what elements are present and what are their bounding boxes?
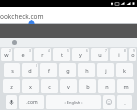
button[interactable]: u [91, 48, 108, 61]
button[interactable]: c [41, 79, 58, 93]
button[interactable]: v [60, 79, 77, 93]
staticText: k [123, 67, 126, 74]
button[interactable]: x [22, 79, 39, 93]
staticText: y [79, 51, 82, 58]
button[interactable]: k [116, 63, 133, 77]
staticText: r [41, 51, 44, 58]
staticText: c [48, 83, 51, 90]
staticText: u [98, 51, 102, 58]
staticText: n [105, 83, 109, 90]
button[interactable]: f [40, 63, 57, 77]
button[interactable]: h [78, 63, 95, 77]
button[interactable]: Emoji [103, 95, 115, 109]
staticText: 7 [105, 49, 107, 53]
button[interactable]: . [117, 95, 132, 109]
button[interactable]: t [53, 48, 70, 61]
button[interactable]: r [34, 48, 51, 61]
staticText: x [29, 83, 32, 90]
button[interactable]: ookcheck.com [0, 7, 137, 24]
staticText: g [66, 67, 70, 74]
button[interactable]: ‹ English › [46, 95, 101, 109]
button[interactable]: m [117, 79, 134, 93]
staticText: .com [26, 99, 38, 106]
staticText: 2 [9, 49, 11, 53]
button[interactable]: o [129, 48, 136, 61]
button[interactable]: Google search suggestion [12, 40, 17, 45]
staticText: 6 [86, 49, 88, 53]
staticText: 8 [124, 49, 126, 53]
staticText: o [131, 51, 135, 58]
other: Voice input [8, 99, 15, 106]
staticText: 3 [29, 49, 31, 53]
button[interactable]: n [98, 79, 115, 93]
staticText: w [4, 51, 9, 58]
staticText: v [67, 83, 70, 90]
staticText: h [85, 67, 89, 74]
button[interactable]: Voice input [6, 95, 17, 109]
staticText: ‹ English › [64, 100, 83, 105]
staticText: ookcheck.com [0, 12, 44, 21]
other: Text selection handle [28, 20, 35, 27]
button[interactable]: j [97, 63, 114, 77]
staticText: d [28, 67, 32, 74]
staticText: 4 [48, 49, 50, 53]
staticText: s [11, 67, 14, 74]
button[interactable]: g [59, 63, 76, 77]
staticText: e [21, 51, 25, 58]
staticText: 9 [133, 49, 135, 53]
staticText: b [86, 83, 90, 90]
button[interactable]: b [79, 79, 96, 93]
staticText: . [124, 99, 126, 106]
staticText: 5 [67, 49, 69, 53]
button[interactable]: y [72, 48, 89, 61]
staticText: i [118, 51, 120, 58]
staticText: f [48, 67, 50, 74]
staticText: t [61, 51, 63, 58]
button[interactable]: z [3, 79, 20, 93]
button[interactable]: w [1, 48, 12, 61]
other: Emoji [106, 99, 112, 105]
button[interactable]: .com [19, 95, 44, 109]
staticText: z [10, 83, 13, 90]
button[interactable]: i [110, 48, 127, 61]
button[interactable]: e [14, 48, 32, 61]
button[interactable]: s [4, 63, 20, 77]
button[interactable]: d [22, 63, 38, 77]
staticText: j [105, 67, 107, 74]
staticText: ( [36, 64, 37, 68]
staticText: m [123, 83, 129, 90]
